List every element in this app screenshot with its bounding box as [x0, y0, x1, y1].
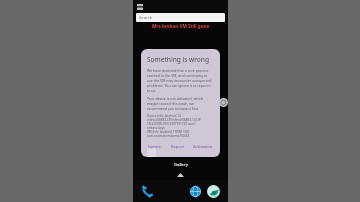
- staticText: Activation: [193, 144, 213, 149]
- button[interactable]: Browser: [188, 184, 202, 198]
- staticText: Gallery: [174, 162, 188, 168]
- staticText: Device Info: Android 14 infinix/X6883-CP…: [147, 114, 201, 138]
- staticText: Mrs broken VM Still gone: [152, 23, 210, 29]
- staticText: Report: [171, 144, 184, 149]
- staticText: Your device is not activated, which mayb…: [147, 96, 214, 111]
- staticText: Search: [139, 15, 153, 21]
- button[interactable]: Search: [136, 13, 225, 22]
- staticText: Something is wrong: [147, 55, 209, 64]
- button[interactable]: Ignore: [147, 143, 162, 150]
- button[interactable]: Report: [170, 143, 185, 150]
- button[interactable]: Floating handle: [219, 98, 228, 107]
- staticText: Ignore: [148, 144, 161, 149]
- button[interactable]: Activation: [192, 143, 214, 150]
- button[interactable]: Phone: [140, 184, 154, 198]
- staticText: We have detected that a core process cra…: [147, 68, 214, 93]
- other: Notification: [137, 4, 143, 10]
- button[interactable]: App: [206, 184, 221, 199]
